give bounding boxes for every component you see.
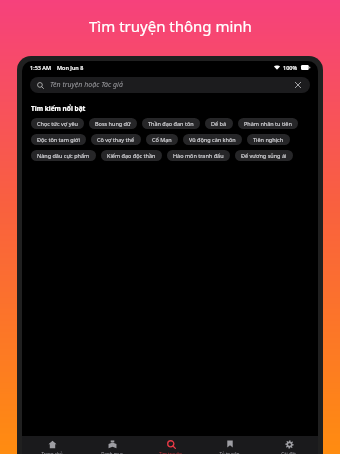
button[interactable]: Trang chủ	[22, 436, 82, 454]
staticText: Trang chủ	[41, 451, 63, 454]
button[interactable]: Tìm truyện	[141, 436, 200, 454]
staticText: 100%	[283, 64, 298, 71]
staticText: Dế bá	[211, 120, 227, 127]
button[interactable]: Tủ truyện	[200, 436, 259, 454]
staticText: Kiếm đạo độc thần	[107, 152, 156, 159]
button[interactable]: Đế vương sủng ái	[235, 150, 293, 161]
staticText: Cài đặt	[281, 451, 296, 454]
button[interactable]: Tên truyện hoặc Tác giả	[30, 77, 310, 93]
staticText: Hào môn tranh đấu	[173, 152, 224, 159]
button[interactable]: Hào môn tranh đấu	[167, 150, 230, 161]
button[interactable]: Cô vợ thay thế	[91, 134, 141, 145]
staticText: Mon Jun 8	[57, 64, 84, 71]
staticText: Boss hung dữ	[95, 120, 131, 127]
staticText: Độc tôn tam giới	[37, 136, 80, 143]
button[interactable]: Cài đặt	[259, 436, 318, 454]
button[interactable]: Cổ Mạn	[146, 134, 178, 145]
staticText: Tìm truyện thông minh	[89, 16, 252, 36]
button[interactable]: Phàm nhân tu tiên	[238, 118, 298, 129]
staticText: Đế vương sủng ái	[241, 152, 287, 159]
staticText: Vũ động càn khôn	[189, 136, 236, 143]
staticText: Chọc tức vợ yêu	[37, 120, 78, 127]
staticText: Cô vợ thay thế	[97, 136, 135, 143]
staticText: Thần đạo đan tôn	[148, 120, 194, 127]
button[interactable]: Chọc tức vợ yêu	[31, 118, 84, 129]
staticText: Cổ Mạn	[152, 136, 172, 143]
button[interactable]: Clear	[293, 80, 303, 90]
button[interactable]: Dế bá	[205, 118, 233, 129]
staticText: Tìm truyện	[159, 451, 182, 454]
button[interactable]: Độc tôn tam giới	[31, 134, 86, 145]
staticText: 1:53 AM	[30, 64, 52, 71]
staticText: Tên truyện hoặc Tác giả	[50, 80, 123, 90]
button[interactable]: Vũ động càn khôn	[183, 134, 242, 145]
staticText: Tìm kiếm nổi bật	[31, 104, 86, 113]
staticText: Phàm nhân tu tiên	[244, 120, 292, 127]
button[interactable]: Nàng dâu cực phẩm	[31, 150, 96, 161]
button[interactable]: Thần đạo đan tôn	[142, 118, 200, 129]
staticText: Tiên nghịch	[253, 136, 284, 143]
button[interactable]: Tiên nghịch	[247, 134, 290, 145]
staticText: Tủ truyện	[219, 451, 240, 454]
button[interactable]: Boss hung dữ	[89, 118, 137, 129]
button[interactable]: Kiếm đạo độc thần	[101, 150, 162, 161]
staticText: Danh mục	[101, 451, 123, 454]
button[interactable]: Danh mục	[82, 436, 141, 454]
staticText: Nàng dâu cực phẩm	[37, 152, 90, 159]
